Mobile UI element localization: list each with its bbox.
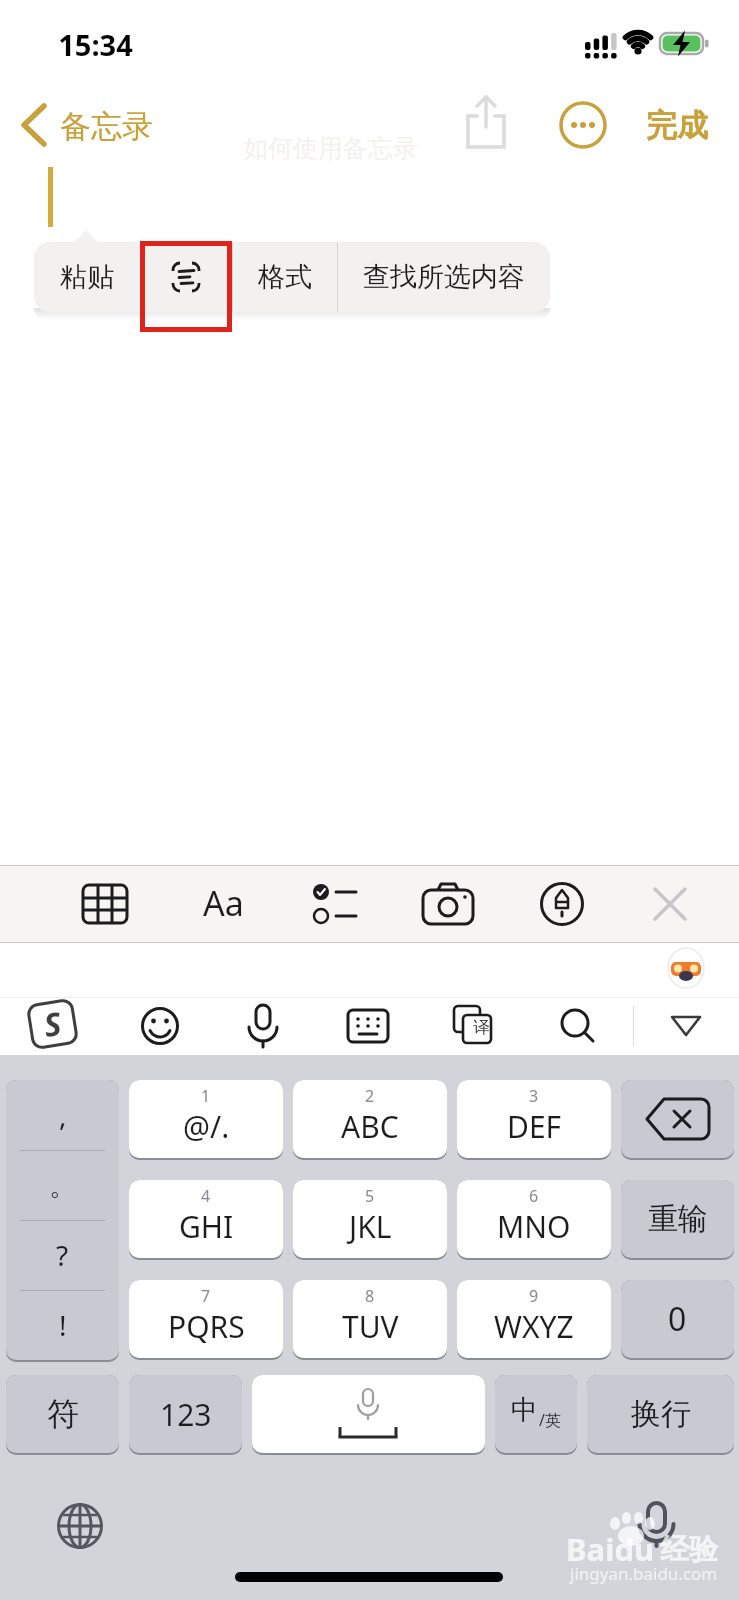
- staticText: 重输: [648, 1200, 708, 1238]
- button[interactable]: 换行: [587, 1375, 734, 1455]
- button[interactable]: 格式: [232, 242, 337, 312]
- button[interactable]: [632, 1496, 684, 1550]
- button[interactable]: 123: [129, 1375, 242, 1455]
- staticText: 译: [473, 1017, 490, 1038]
- button[interactable]: 9: [457, 1280, 611, 1360]
- staticText: S: [41, 1001, 64, 1047]
- button[interactable]: 3: [457, 1080, 611, 1160]
- staticText: 0: [668, 1297, 687, 1341]
- button[interactable]: 粘贴: [34, 242, 140, 312]
- staticText: 格式: [258, 260, 312, 294]
- staticText: ABC: [341, 1106, 399, 1147]
- button[interactable]: 4: [129, 1180, 283, 1260]
- button[interactable]: 0: [621, 1280, 734, 1360]
- button[interactable]: 符: [6, 1375, 119, 1455]
- button[interactable]: [552, 1001, 604, 1051]
- staticText: 经验: [660, 1531, 718, 1568]
- staticText: 2: [365, 1085, 375, 1107]
- button[interactable]: ,: [6, 1080, 119, 1150]
- button[interactable]: 中: [495, 1375, 577, 1455]
- button[interactable]: 备忘录: [16, 100, 176, 150]
- staticText: 备忘录: [60, 107, 153, 146]
- staticText: 中: [511, 1393, 538, 1427]
- button[interactable]: [342, 1001, 394, 1051]
- button[interactable]: 6: [457, 1180, 611, 1260]
- button[interactable]: 8: [293, 1280, 447, 1360]
- staticText: @/.: [183, 1106, 230, 1147]
- button[interactable]: [621, 1080, 734, 1160]
- staticText: 15:34: [58, 25, 133, 64]
- staticText: PQRS: [168, 1306, 245, 1347]
- staticText: !: [59, 1306, 67, 1344]
- button[interactable]: [140, 242, 232, 312]
- button[interactable]: [642, 877, 698, 931]
- button[interactable]: 。: [6, 1150, 119, 1220]
- staticText: MNO: [497, 1206, 571, 1247]
- button[interactable]: 1: [129, 1080, 283, 1160]
- button[interactable]: [558, 100, 608, 150]
- staticText: Aa: [203, 880, 244, 926]
- staticText: 7: [201, 1285, 211, 1307]
- staticText: 4: [201, 1185, 211, 1207]
- staticText: ,: [59, 1096, 67, 1134]
- button[interactable]: ?: [6, 1220, 119, 1290]
- button[interactable]: !: [6, 1290, 119, 1360]
- button[interactable]: 2: [293, 1080, 447, 1160]
- button[interactable]: [134, 1001, 186, 1051]
- staticText: 5: [365, 1185, 375, 1207]
- button[interactable]: [306, 877, 362, 931]
- staticText: 9: [529, 1285, 539, 1307]
- staticText: Baidu: [566, 1528, 655, 1570]
- staticText: 123: [160, 1394, 212, 1435]
- staticText: 查找所选内容: [363, 260, 525, 294]
- staticText: DEF: [507, 1106, 562, 1147]
- button[interactable]: S: [26, 998, 79, 1050]
- button[interactable]: [534, 877, 590, 931]
- staticText: WXYZ: [494, 1306, 574, 1347]
- button[interactable]: [238, 1001, 288, 1051]
- staticText: 完成: [646, 106, 708, 145]
- staticText: 6: [529, 1185, 539, 1207]
- staticText: ?: [56, 1236, 69, 1274]
- button[interactable]: [52, 1498, 108, 1554]
- button[interactable]: [660, 1001, 712, 1051]
- button[interactable]: 7: [129, 1280, 283, 1360]
- button[interactable]: [460, 95, 512, 155]
- button[interactable]: [667, 947, 707, 989]
- staticText: 如何使用备忘录: [243, 133, 418, 164]
- staticText: 1: [201, 1085, 211, 1107]
- button[interactable]: [78, 877, 132, 931]
- staticText: /英: [539, 1409, 561, 1431]
- staticText: jingyan.baidu.com: [570, 1562, 718, 1585]
- button[interactable]: Aa: [188, 873, 258, 933]
- button[interactable]: [252, 1375, 485, 1455]
- button[interactable]: 完成: [632, 102, 722, 148]
- staticText: TUV: [342, 1306, 399, 1347]
- staticText: 8: [365, 1285, 375, 1307]
- staticText: GHI: [179, 1206, 234, 1247]
- button[interactable]: 译: [446, 1001, 498, 1051]
- staticText: 。: [49, 1168, 77, 1203]
- button[interactable]: 5: [293, 1180, 447, 1260]
- staticText: 换行: [631, 1395, 691, 1433]
- staticText: 符: [47, 1394, 79, 1434]
- staticText: 粘贴: [60, 260, 114, 294]
- button[interactable]: 重输: [621, 1180, 734, 1260]
- staticText: JKL: [349, 1206, 392, 1247]
- button[interactable]: 查找所选内容: [337, 242, 550, 312]
- button[interactable]: [420, 877, 476, 931]
- staticText: 3: [529, 1085, 539, 1107]
